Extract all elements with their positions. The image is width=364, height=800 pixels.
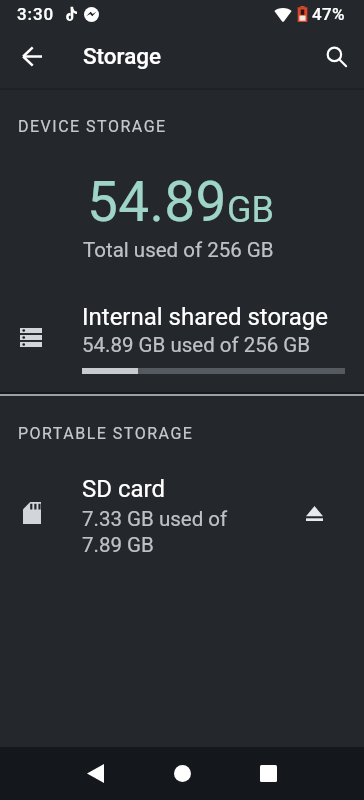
staticText: DEVICE STORAGE: [18, 117, 167, 136]
staticText: Storage: [83, 43, 162, 69]
staticText: 54.89: [87, 170, 227, 234]
button[interactable]: Navigate up: [4, 28, 60, 84]
staticText: SD card: [82, 475, 166, 503]
button[interactable]: SD card: [0, 464, 364, 568]
staticText: PORTABLE STORAGE: [18, 424, 194, 443]
button[interactable]: Back: [62, 747, 128, 800]
staticText: Internal shared storage: [82, 303, 328, 331]
staticText: GB: [227, 189, 274, 231]
staticText: 3:30: [17, 4, 55, 24]
button[interactable]: Recent apps: [235, 747, 301, 800]
staticText: 47%: [312, 4, 346, 24]
button[interactable]: Eject SD card: [288, 487, 340, 539]
button[interactable]: Home: [149, 747, 215, 800]
staticText: 7.33 GB used of 7.89 GB: [82, 507, 242, 557]
button[interactable]: Internal shared storage: [0, 292, 364, 386]
button[interactable]: Search: [308, 28, 364, 84]
staticText: 54.89 GB used of 256 GB: [82, 333, 311, 357]
staticText: Total used of 256 GB: [83, 238, 274, 262]
